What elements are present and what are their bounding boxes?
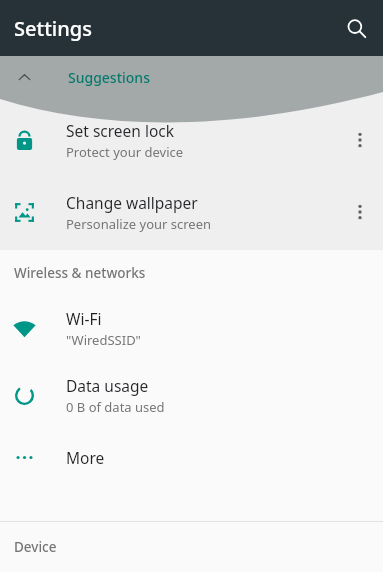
staticText: Personalize your screen: [66, 215, 212, 233]
button[interactable]: More: [0, 429, 383, 486]
button[interactable]: Change wallpaper: [0, 176, 383, 248]
staticText: Change wallpaper: [66, 192, 198, 213]
staticText: Device: [14, 538, 57, 556]
button[interactable]: Wi-Fi: [0, 295, 383, 362]
button[interactable]: Search: [334, 6, 378, 50]
button[interactable]: Collapse suggestions: [0, 56, 383, 98]
staticText: More: [66, 447, 105, 468]
button[interactable]: Data usage: [0, 362, 383, 429]
staticText: Set screen lock: [66, 120, 175, 141]
button[interactable]: More options: [339, 191, 381, 233]
other: Collapse suggestions: [16, 69, 33, 86]
staticText: Settings: [14, 15, 92, 42]
staticText: Data usage: [66, 375, 149, 396]
staticText: 0 B of data used: [66, 398, 165, 416]
staticText: Wireless & networks: [14, 264, 146, 282]
staticText: "WiredSSID": [66, 331, 141, 349]
button[interactable]: Set screen lock: [0, 104, 383, 176]
button[interactable]: More options: [339, 119, 381, 161]
staticText: Wi-Fi: [66, 308, 102, 329]
staticText: Suggestions: [68, 68, 150, 87]
staticText: Protect your device: [66, 143, 184, 161]
